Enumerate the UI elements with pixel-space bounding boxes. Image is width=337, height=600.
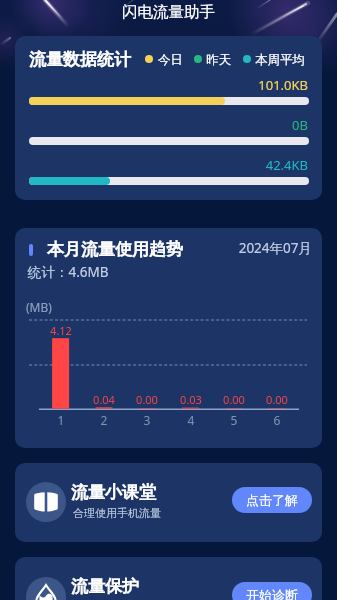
staticText: 0.00 (194, 392, 274, 407)
staticText: 本周平均 (255, 52, 305, 68)
staticText: 2 (64, 412, 144, 428)
staticText: 点击了解 (246, 492, 298, 508)
staticText: 统计：4.6MB (28, 263, 109, 281)
button[interactable]: 开始诊断 (232, 582, 312, 600)
staticText: 开始诊断 (246, 587, 298, 600)
other: 流量保护 (26, 577, 66, 600)
staticText: 0.00 (237, 392, 317, 407)
staticText: 42.4KB (148, 156, 308, 174)
staticText: 流量数据统计 (29, 49, 131, 70)
staticText: 0.00 (107, 392, 187, 407)
staticText: 今日 (158, 52, 183, 68)
other: 流量小课堂 (26, 482, 66, 522)
staticText: 1 (21, 412, 101, 428)
staticText: (MB) (26, 299, 52, 315)
staticText: 流量保护 (71, 576, 139, 597)
button[interactable]: 点击了解 (232, 487, 312, 513)
staticText: 3 (107, 412, 187, 428)
staticText: 0.04 (64, 392, 144, 407)
staticText: 本月流量使用趋势 (47, 239, 183, 260)
staticText: 昨天 (206, 52, 231, 68)
staticText: 4 (151, 412, 231, 428)
staticText: 0B (148, 116, 308, 134)
staticText: 2024年07月 (152, 239, 312, 257)
staticText: 流量小课堂 (71, 482, 156, 503)
staticText: 6 (237, 412, 317, 428)
staticText: 4.12 (21, 323, 101, 338)
staticText: 5 (194, 412, 274, 428)
staticText: 0.03 (151, 392, 231, 407)
staticText: 闪电流量助手 (122, 2, 215, 22)
staticText: 合理使用手机流量 (73, 506, 161, 520)
staticText: 101.0KB (148, 76, 308, 94)
